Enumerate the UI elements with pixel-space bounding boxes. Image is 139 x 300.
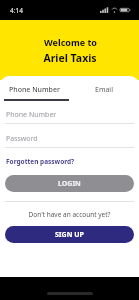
staticText: Forgotten password? [6, 157, 75, 166]
button[interactable]: Phone Number [5, 108, 134, 123]
staticText: Phone Number [6, 110, 57, 120]
button[interactable]: Forgotten password? [6, 156, 75, 167]
button[interactable]: Password [5, 132, 134, 147]
button[interactable]: LOGIN [5, 175, 134, 192]
staticText: Don't have an account yet? [0, 210, 139, 219]
staticText: SIGN UP [55, 230, 84, 240]
staticText: Email [95, 85, 113, 95]
staticText: 4:14 [10, 6, 23, 15]
button[interactable]: Phone Number [0, 81, 69, 99]
staticText: Ariel Taxis [43, 51, 97, 65]
button[interactable]: SIGN UP [5, 226, 134, 243]
other: Home indicator [0, 277, 139, 300]
staticText: Phone Number [9, 85, 60, 95]
staticText: Welcome to [44, 36, 97, 48]
staticText: LOGIN [58, 179, 81, 189]
staticText: Password [6, 134, 38, 144]
button[interactable]: Email [69, 81, 139, 99]
